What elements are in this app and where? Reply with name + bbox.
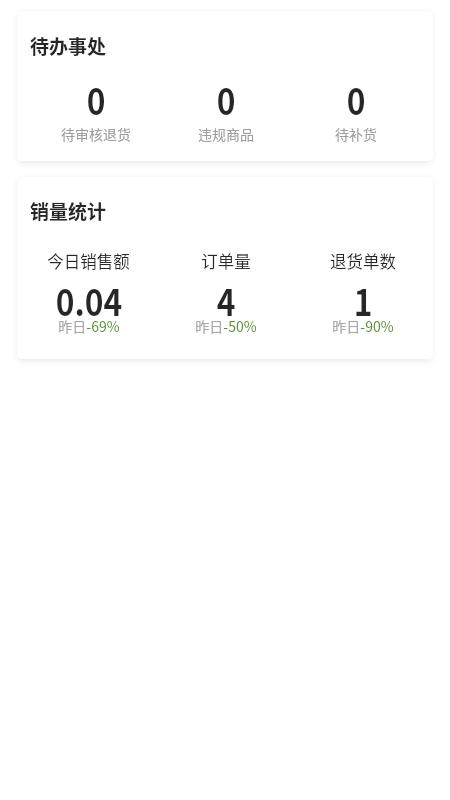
button[interactable]: 0 <box>161 73 291 145</box>
staticText: 昨日-90% <box>332 316 394 336</box>
button[interactable]: 今日销售额 <box>20 249 157 346</box>
staticText: 0 <box>346 73 366 125</box>
staticText: 今日销售额 <box>47 249 130 273</box>
staticText: 昨日-50% <box>195 316 257 336</box>
staticText: 销量统计 <box>30 197 107 225</box>
staticText: 1 <box>353 274 373 326</box>
staticText: 违规商品 <box>198 124 254 144</box>
staticText: 待审核退货 <box>61 124 131 144</box>
staticText: 4 <box>216 274 236 326</box>
button[interactable]: 0 <box>291 73 421 145</box>
staticText: 待补货 <box>335 124 377 144</box>
staticText: 0.04 <box>56 274 122 326</box>
button[interactable]: 订单量 <box>157 249 294 346</box>
staticText: 订单量 <box>201 249 251 273</box>
staticText: 退货单数 <box>330 249 396 273</box>
button[interactable]: 退货单数 <box>294 249 431 346</box>
staticText: 待办事处 <box>30 32 107 60</box>
button[interactable]: 0 <box>30 73 161 145</box>
staticText: 0 <box>86 73 106 125</box>
staticText: 0 <box>216 73 236 125</box>
staticText: 昨日-69% <box>58 316 120 336</box>
